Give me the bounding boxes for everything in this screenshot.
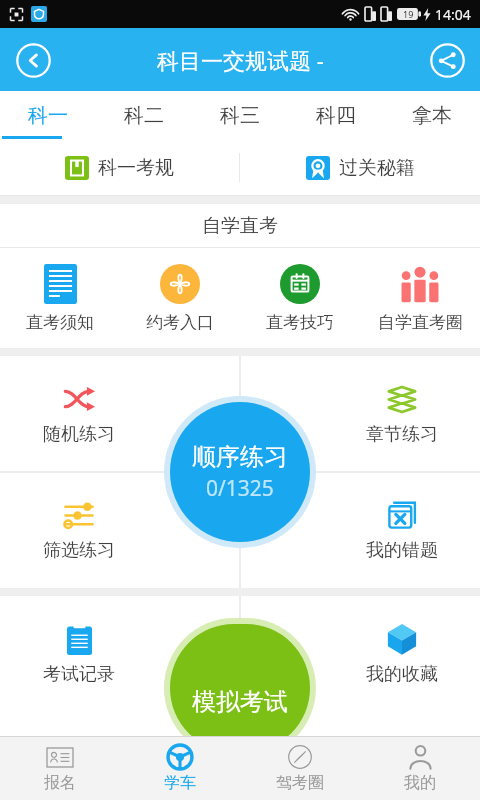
button[interactable]: 报名 <box>0 737 120 800</box>
staticText: 报名 <box>44 773 76 793</box>
staticText: 考试记录 <box>43 663 115 686</box>
button[interactable]: 模拟考试 <box>170 624 310 752</box>
staticText: 科一考规 <box>98 156 174 180</box>
button[interactable]: 筛选练习 <box>0 472 158 588</box>
button[interactable]: 科一考规 <box>0 140 239 195</box>
button[interactable]: 直考技巧 <box>240 248 360 348</box>
staticText: 随机练习 <box>43 423 115 446</box>
button[interactable]: 科二 <box>96 91 192 140</box>
button[interactable]: Back <box>10 37 56 83</box>
staticText: 筛选练习 <box>43 539 115 562</box>
staticText: 14:04 <box>435 5 471 24</box>
button[interactable]: 我的收藏 <box>323 596 480 712</box>
staticText: 直考须知 <box>26 312 94 333</box>
button[interactable]: 过关秘籍 <box>240 140 480 195</box>
button[interactable]: 自学直考圈 <box>360 248 480 348</box>
staticText: 学车 <box>164 773 196 793</box>
button[interactable]: 科三 <box>192 91 288 140</box>
staticText: 模拟考试 <box>192 687 288 717</box>
staticText: 自学直考 <box>202 214 278 238</box>
button[interactable]: 随机练习 <box>0 356 158 472</box>
staticText: 科二 <box>124 103 164 128</box>
button[interactable]: 顺序练习 <box>170 402 310 542</box>
staticText: 19 <box>403 8 414 20</box>
staticText: 顺序练习 <box>192 442 288 472</box>
staticText: 我的收藏 <box>366 663 438 686</box>
button[interactable]: Share <box>424 37 470 83</box>
button[interactable]: 我的错题 <box>323 472 480 588</box>
button[interactable]: 直考须知 <box>0 248 120 348</box>
staticText: 直考技巧 <box>266 312 334 333</box>
staticText: 约考入口 <box>146 312 214 333</box>
button[interactable]: 拿本 <box>384 91 480 140</box>
staticText: 科四 <box>316 103 356 128</box>
staticText: 科目一交规试题 - <box>157 45 324 75</box>
button[interactable]: 学车 <box>120 737 240 800</box>
staticText: 驾考圈 <box>276 773 324 793</box>
button[interactable]: 我的 <box>360 737 480 800</box>
button[interactable]: 考试记录 <box>0 596 158 712</box>
staticText: 我的错题 <box>366 539 438 562</box>
staticText: 自学直考圈 <box>378 312 463 333</box>
button[interactable]: 驾考圈 <box>240 737 360 800</box>
staticText: 科一 <box>28 103 68 128</box>
button[interactable]: 章节练习 <box>323 356 480 472</box>
button[interactable]: 约考入口 <box>120 248 240 348</box>
staticText: 我的 <box>404 773 436 793</box>
staticText: 0/1325 <box>206 474 274 503</box>
button[interactable]: 科一 <box>0 91 96 140</box>
staticText: 过关秘籍 <box>339 156 415 180</box>
button[interactable]: 科四 <box>288 91 384 140</box>
staticText: 科三 <box>220 103 260 128</box>
staticText: 拿本 <box>412 103 452 128</box>
staticText: 章节练习 <box>366 423 438 446</box>
